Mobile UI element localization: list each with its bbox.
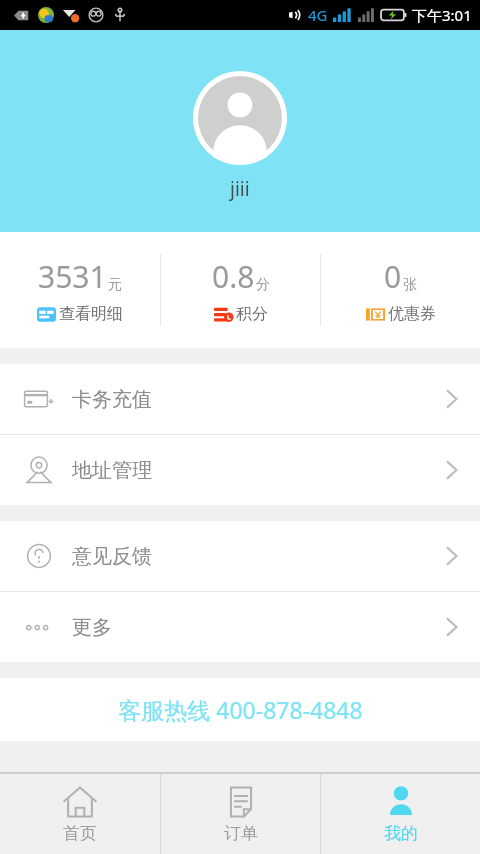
button[interactable]: 我的 xyxy=(321,774,480,854)
button[interactable]: 0.8 xyxy=(161,232,320,348)
button[interactable]: 首页 xyxy=(0,774,160,854)
button[interactable]: 0 xyxy=(321,232,480,348)
staticText: 首页 xyxy=(63,823,97,844)
staticText: 查看明细 xyxy=(59,304,123,324)
staticText: 3531 xyxy=(38,256,107,297)
button[interactable]: 地址管理 xyxy=(0,435,480,505)
button[interactable]: 订单 xyxy=(161,774,320,854)
staticText: 下午3:01 xyxy=(412,5,472,25)
staticText: 更多 xyxy=(72,615,112,640)
button[interactable]: 卡务充值 xyxy=(0,364,480,434)
staticText: 卡务充值 xyxy=(72,387,152,412)
staticText: 客服热线 400-878-4848 xyxy=(118,694,363,725)
staticText: 4G xyxy=(308,5,328,25)
staticText: 我的 xyxy=(384,823,418,844)
button[interactable]: 更多 xyxy=(0,592,480,662)
staticText: 订单 xyxy=(224,823,258,844)
staticText: 元 xyxy=(108,276,122,294)
staticText: jiii xyxy=(230,176,250,202)
staticText: 0.8 xyxy=(212,256,255,297)
button[interactable]: 客服热线 400-878-4848 xyxy=(0,678,480,741)
staticText: 0 xyxy=(384,256,402,297)
staticText: 优惠券 xyxy=(388,304,436,324)
staticText: 张 xyxy=(403,276,417,294)
staticText: 分 xyxy=(256,276,270,294)
staticText: 意见反馈 xyxy=(72,544,152,569)
button[interactable]: 意见反馈 xyxy=(0,521,480,591)
staticText: 地址管理 xyxy=(72,458,152,483)
staticText: 积分 xyxy=(236,304,268,324)
button[interactable]: 3531 xyxy=(0,232,160,348)
